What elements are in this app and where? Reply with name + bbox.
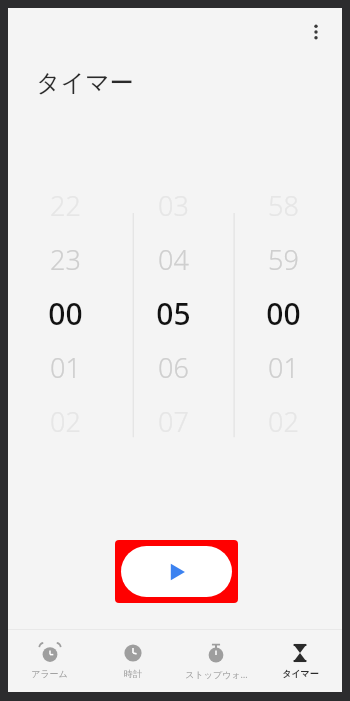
staticText: 時計 (124, 668, 142, 679)
staticText: タイマー (282, 668, 319, 679)
staticText: アラーム (31, 668, 68, 679)
staticText: 22 (50, 187, 81, 224)
staticText: 00 (48, 293, 83, 334)
staticText: 07 (158, 403, 189, 440)
button[interactable]: Minutes (123, 178, 224, 448)
button[interactable]: Seconds (224, 178, 342, 448)
staticText: 06 (158, 349, 189, 386)
staticText: 00 (266, 293, 301, 334)
staticText: 23 (50, 241, 81, 278)
staticText: 02 (50, 403, 81, 440)
button[interactable]: 時計 (91, 643, 174, 679)
button[interactable]: ストップウォ… (174, 643, 258, 680)
staticText: 04 (158, 241, 189, 278)
staticText: 05 (156, 293, 191, 334)
staticText: 03 (158, 187, 189, 224)
button[interactable]: Hours (8, 178, 123, 448)
staticText: ストップウォ… (185, 668, 248, 680)
button[interactable]: More options (296, 12, 336, 52)
staticText: タイマー (36, 68, 134, 98)
staticText: 01 (50, 349, 81, 386)
staticText: 58 (268, 187, 299, 224)
staticText: 59 (268, 241, 299, 278)
staticText: 02 (268, 403, 299, 440)
staticText: 01 (268, 349, 299, 386)
button[interactable]: タイマー (258, 643, 342, 679)
button[interactable]: Start timer (121, 546, 232, 597)
button[interactable]: アラーム (8, 643, 91, 679)
